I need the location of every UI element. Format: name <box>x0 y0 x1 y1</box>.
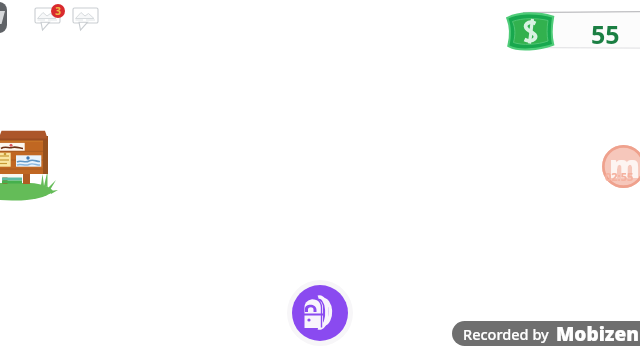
staticText: Recorded by <box>463 324 549 344</box>
button[interactable]: Messages, 3 new <box>35 6 69 36</box>
staticText: m <box>609 145 640 187</box>
staticText: 02:55 <box>605 169 634 184</box>
button[interactable]: Profile <box>0 2 7 33</box>
staticText: 3 <box>55 4 61 18</box>
staticText: Mobizen <box>556 321 639 346</box>
button[interactable]: News <box>73 6 107 36</box>
staticText: 55 <box>591 17 620 51</box>
button[interactable]: Coins: 55 <box>509 11 640 49</box>
button[interactable]: Notice board <box>0 128 58 202</box>
button[interactable]: Backpack <box>287 280 353 346</box>
